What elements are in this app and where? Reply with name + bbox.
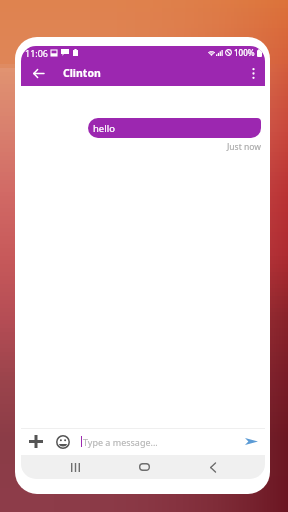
staticText: Just now bbox=[227, 141, 261, 153]
staticText: Clinton bbox=[63, 66, 101, 80]
button[interactable]: Attach bbox=[26, 432, 45, 451]
button[interactable]: Home bbox=[134, 455, 154, 479]
staticText: 11:06 bbox=[25, 47, 49, 59]
button[interactable]: Emoji bbox=[53, 432, 72, 451]
button[interactable]: Send bbox=[242, 432, 261, 451]
staticText: hello bbox=[93, 122, 115, 135]
button[interactable]: Back bbox=[28, 63, 48, 83]
button[interactable]: More options bbox=[243, 63, 263, 83]
button[interactable]: Recent apps bbox=[65, 455, 85, 479]
button[interactable]: Back bbox=[203, 455, 223, 479]
staticText: Type a message... bbox=[83, 436, 158, 448]
staticText: 100% bbox=[234, 47, 255, 58]
button[interactable]: hello bbox=[88, 118, 261, 138]
